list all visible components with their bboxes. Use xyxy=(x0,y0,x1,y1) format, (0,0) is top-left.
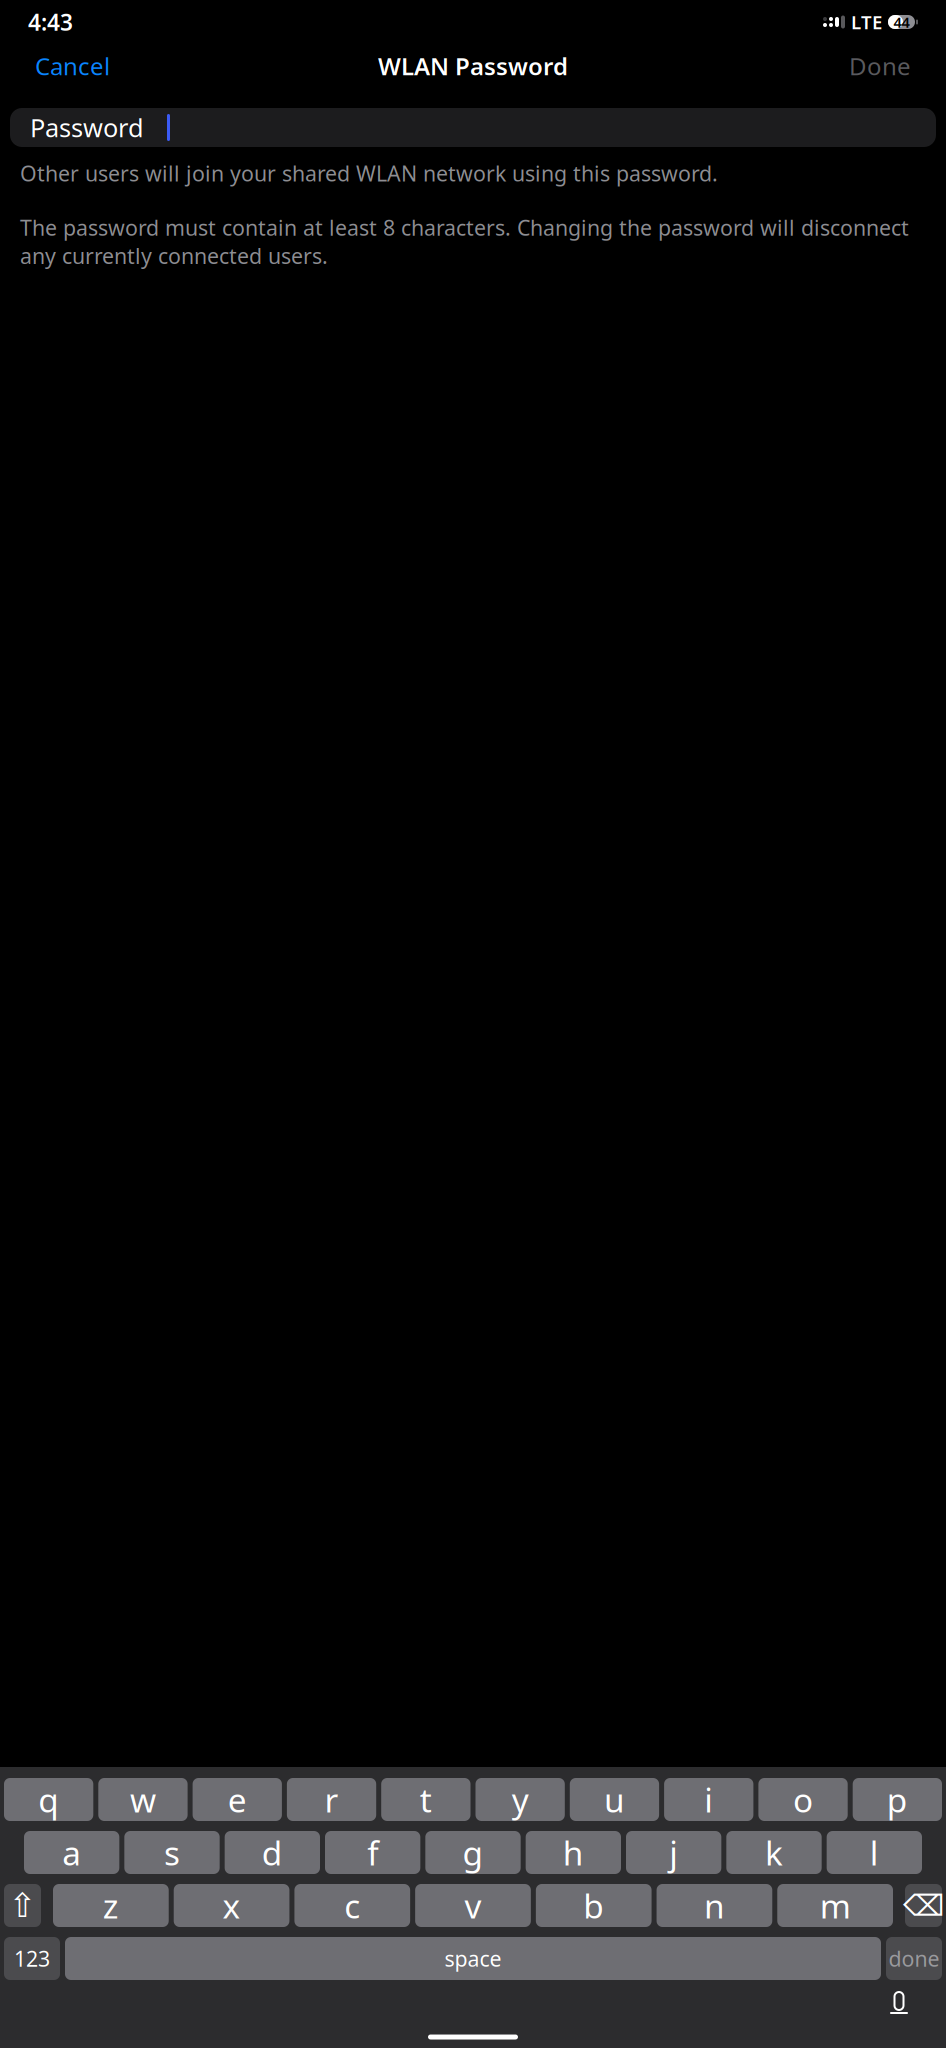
button[interactable]: r xyxy=(287,1778,376,1821)
staticText: d xyxy=(262,1830,283,1875)
staticText: a xyxy=(62,1830,81,1875)
staticText: v xyxy=(464,1883,481,1928)
button[interactable]: o xyxy=(758,1778,848,1821)
staticText: x xyxy=(223,1883,241,1928)
staticText: h xyxy=(563,1830,584,1875)
staticText: Other users will join your shared WLAN n… xyxy=(20,159,718,187)
staticText: e xyxy=(228,1777,247,1822)
staticText: Done xyxy=(849,50,911,82)
staticText: g xyxy=(462,1830,483,1875)
staticText: z xyxy=(103,1883,119,1928)
staticText: i xyxy=(704,1777,713,1822)
button[interactable]: t xyxy=(381,1778,470,1821)
staticText: Cancel xyxy=(35,50,110,82)
button[interactable]: 123 xyxy=(4,1937,60,1980)
staticText: r xyxy=(325,1777,339,1822)
button[interactable]: Dictate xyxy=(882,1986,916,2020)
staticText: m xyxy=(820,1883,851,1928)
staticText: o xyxy=(793,1777,813,1822)
button[interactable]: h xyxy=(526,1831,621,1874)
staticText: 44 xyxy=(893,12,909,32)
button[interactable]: done xyxy=(886,1937,942,1980)
staticText: ⇧ xyxy=(8,1887,36,1924)
button[interactable]: p xyxy=(853,1778,942,1821)
staticText: b xyxy=(583,1883,604,1928)
button[interactable]: k xyxy=(726,1831,822,1874)
button[interactable]: s xyxy=(124,1831,220,1874)
button[interactable]: a xyxy=(24,1831,119,1874)
staticText: 4:43 xyxy=(28,7,73,37)
button[interactable]: x xyxy=(174,1884,289,1927)
button[interactable]: q xyxy=(4,1778,93,1821)
staticText: LTE xyxy=(851,10,882,34)
button[interactable]: z xyxy=(53,1884,169,1927)
staticText: f xyxy=(367,1830,378,1875)
staticText: s xyxy=(164,1830,180,1875)
staticText: The password must contain at least 8 cha… xyxy=(20,213,909,270)
button[interactable]: b xyxy=(536,1884,652,1927)
button[interactable]: space xyxy=(65,1937,881,1980)
button[interactable]: d xyxy=(225,1831,320,1874)
staticText: n xyxy=(704,1883,725,1928)
staticText: j xyxy=(669,1830,678,1875)
button[interactable]: Delete xyxy=(905,1884,942,1927)
staticText: u xyxy=(604,1777,625,1822)
staticText: 123 xyxy=(14,1944,50,1973)
staticText: Password xyxy=(30,111,144,144)
button[interactable]: g xyxy=(425,1831,521,1874)
button[interactable]: w xyxy=(98,1778,188,1821)
button[interactable]: c xyxy=(294,1884,410,1927)
staticText: k xyxy=(765,1830,783,1875)
staticText: c xyxy=(344,1883,360,1928)
button[interactable]: n xyxy=(657,1884,772,1927)
staticText: q xyxy=(38,1777,59,1822)
button[interactable]: e xyxy=(193,1778,282,1821)
button[interactable]: i xyxy=(664,1778,753,1821)
button[interactable]: j xyxy=(626,1831,721,1874)
staticText: l xyxy=(870,1830,879,1875)
button[interactable]: y xyxy=(475,1778,565,1821)
staticText: p xyxy=(887,1777,908,1822)
staticText: space xyxy=(444,1944,501,1973)
button[interactable]: v xyxy=(415,1884,531,1927)
staticText: ⌫ xyxy=(903,1889,944,1922)
button[interactable]: Shift xyxy=(4,1884,41,1927)
button[interactable]: u xyxy=(570,1778,659,1821)
staticText: w xyxy=(130,1777,156,1822)
staticText: t xyxy=(420,1777,432,1822)
staticText: WLAN Password xyxy=(378,50,568,82)
staticText: y xyxy=(512,1777,529,1822)
button[interactable]: m xyxy=(777,1884,893,1927)
button[interactable]: l xyxy=(827,1831,922,1874)
button[interactable]: f xyxy=(325,1831,420,1874)
button[interactable]: Password xyxy=(10,108,936,147)
staticText: done xyxy=(888,1944,939,1973)
button[interactable]: Cancel xyxy=(24,43,121,89)
button[interactable]: Done xyxy=(838,43,922,89)
